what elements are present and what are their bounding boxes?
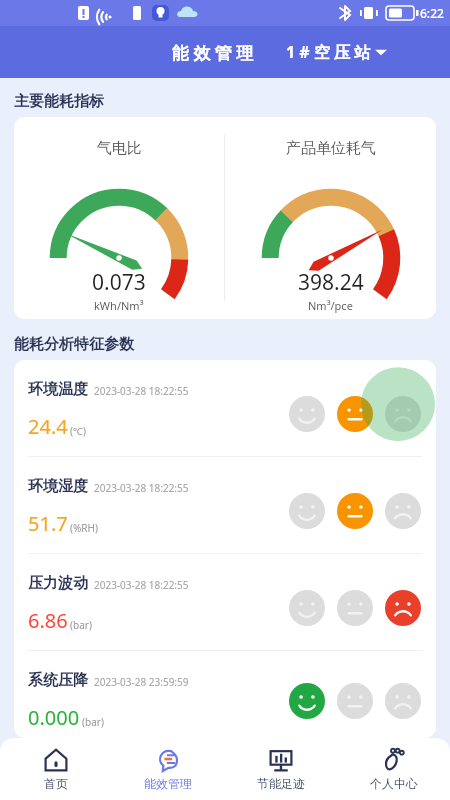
button[interactable]: Bad: [385, 683, 421, 719]
staticText: 个人中心: [370, 776, 418, 791]
staticText: 能耗分析特征参数: [14, 335, 134, 354]
button[interactable]: 能效管理: [112, 738, 224, 800]
staticText: (bar): [70, 618, 92, 632]
staticText: 2023-03-28 18:22:55: [94, 481, 189, 495]
button[interactable]: 首页: [0, 738, 112, 800]
staticText: 气电比: [97, 139, 142, 158]
staticText: 1 # 空 压 站: [286, 41, 371, 63]
staticText: 系统压降: [28, 671, 88, 690]
staticText: 6.86: [28, 607, 68, 634]
staticText: 2023-03-28 18:22:55: [94, 384, 189, 398]
staticText: 能 效 管 理: [172, 41, 254, 64]
staticText: 环境温度: [28, 380, 88, 399]
button[interactable]: Bad: [385, 396, 421, 432]
button[interactable]: Neutral: [337, 683, 373, 719]
button[interactable]: 环境温度: [14, 360, 436, 456]
button[interactable]: Good: [289, 683, 325, 719]
button[interactable]: Neutral: [337, 396, 373, 432]
button[interactable]: 系统压降: [14, 651, 436, 738]
staticText: 产品单位耗气: [286, 139, 376, 158]
staticText: Nm³/pce: [308, 298, 353, 313]
button[interactable]: Neutral: [337, 493, 373, 529]
staticText: 0.000: [28, 704, 80, 731]
staticText: 6:22: [420, 5, 444, 21]
staticText: 2023-03-28 23:59:59: [94, 675, 189, 689]
staticText: 398.24: [298, 268, 364, 297]
button[interactable]: Bad: [385, 590, 421, 626]
button[interactable]: Bad: [385, 493, 421, 529]
button[interactable]: 环境湿度: [14, 457, 436, 553]
staticText: 51.7: [28, 510, 68, 537]
button[interactable]: 节能足迹: [224, 738, 337, 800]
button[interactable]: 1 # 空 压 站: [284, 35, 390, 69]
staticText: 24.4: [28, 413, 68, 440]
staticText: 0.073: [92, 268, 146, 297]
staticText: (%RH): [70, 521, 98, 535]
button[interactable]: Good: [289, 493, 325, 529]
staticText: 能效管理: [144, 776, 192, 791]
staticText: (℃): [70, 424, 86, 438]
button[interactable]: Good: [289, 396, 325, 432]
staticText: 环境湿度: [28, 477, 88, 496]
button[interactable]: 压力波动: [14, 554, 436, 650]
staticText: (bar): [82, 715, 104, 729]
staticText: 2023-03-28 18:22:55: [94, 578, 189, 592]
staticText: 压力波动: [28, 574, 88, 593]
staticText: kWh/Nm³: [94, 298, 144, 313]
staticText: 主要能耗指标: [14, 92, 104, 111]
button[interactable]: Neutral: [337, 590, 373, 626]
button[interactable]: Good: [289, 590, 325, 626]
staticText: 节能足迹: [257, 776, 305, 791]
staticText: 首页: [44, 776, 68, 791]
button[interactable]: 个人中心: [337, 738, 450, 800]
